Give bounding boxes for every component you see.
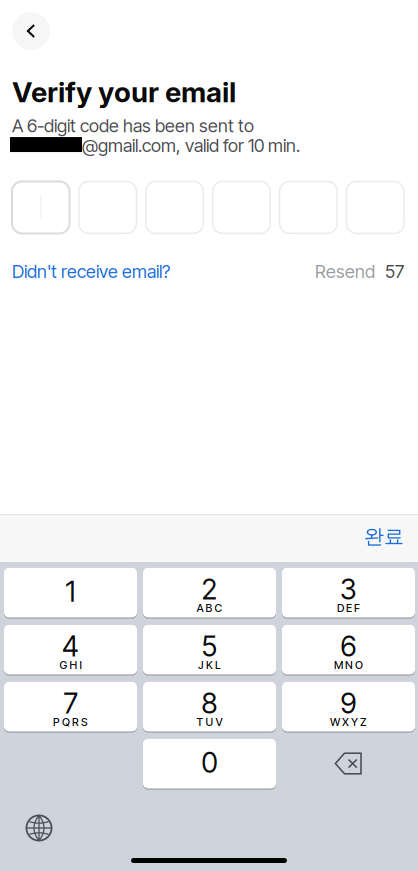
button[interactable]: 6 (282, 624, 415, 675)
staticText: 3 (340, 572, 357, 606)
staticText: 9 (340, 686, 356, 720)
button[interactable]: 3 (282, 567, 415, 618)
button[interactable]: 0 (143, 738, 276, 789)
staticText: 0 (201, 745, 217, 779)
staticText: P Q R S (53, 715, 88, 728)
staticText: 1 (65, 574, 75, 608)
staticText: A B C (196, 601, 222, 614)
button[interactable]: 7 (4, 681, 137, 732)
staticText: 7 (63, 686, 77, 720)
staticText: D E F (337, 601, 360, 614)
staticText: Resend (315, 260, 375, 282)
staticText: 6 (340, 629, 356, 663)
button[interactable]: 4 (4, 624, 137, 675)
staticText: G H I (59, 658, 81, 671)
staticText: @gmail.com, valid for 10 min. (82, 135, 300, 156)
staticText: 2 (201, 572, 217, 606)
staticText: 57 (385, 260, 404, 282)
staticText: M N O (334, 658, 363, 671)
button[interactable]: Didn't receive email? (12, 260, 170, 282)
button[interactable]: 8 (143, 681, 276, 732)
staticText: 5 (201, 629, 217, 663)
staticText: Didn't receive email? (12, 260, 170, 282)
button[interactable]: 1 (4, 567, 137, 618)
button[interactable]: Next keyboard (15, 806, 63, 850)
button[interactable]: 5 (143, 624, 276, 675)
staticText: 4 (62, 629, 79, 663)
staticText: A 6-digit code has been sent to (12, 115, 254, 137)
staticText: 8 (201, 686, 217, 720)
staticText: T U V (196, 715, 222, 728)
staticText: Verify your email (12, 75, 236, 109)
staticText: J K L (198, 658, 221, 671)
staticText: W X Y Z (330, 715, 367, 728)
button[interactable]: 2 (143, 567, 276, 618)
button[interactable]: Delete (282, 738, 415, 789)
button[interactable]: Resend (315, 260, 404, 282)
button[interactable]: 완료 (350, 515, 418, 561)
button[interactable]: 9 (282, 681, 415, 732)
button[interactable]: Back (12, 12, 50, 50)
staticText: 완료 (364, 524, 404, 549)
